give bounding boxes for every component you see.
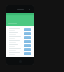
- button[interactable]: Action: [24, 32, 31, 35]
- button[interactable]: Action: [24, 52, 31, 55]
- button[interactable]: Action: [8, 51, 32, 55]
- button[interactable]: Action: [24, 40, 31, 43]
- button[interactable]: [6, 13, 34, 26]
- button[interactable]: Action: [8, 27, 32, 31]
- button[interactable]: Action: [24, 28, 31, 31]
- button[interactable]: Action: [24, 36, 31, 39]
- button[interactable]: Action: [24, 48, 31, 51]
- button[interactable]: Action: [8, 43, 32, 47]
- button[interactable]: Action: [24, 44, 31, 47]
- button[interactable]: Action: [8, 39, 32, 43]
- button[interactable]: Action: [8, 35, 32, 39]
- button[interactable]: Action: [8, 31, 32, 35]
- button[interactable]: Action: [8, 47, 32, 51]
